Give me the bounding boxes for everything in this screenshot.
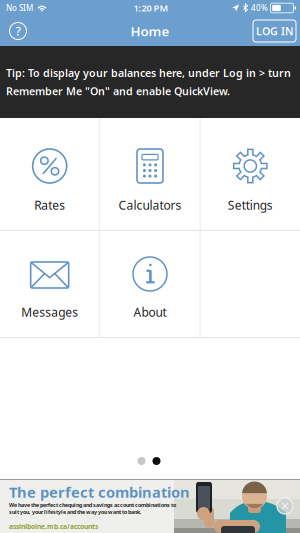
button[interactable]: Calculators [100, 118, 200, 230]
button[interactable]: Messages [0, 231, 99, 337]
button[interactable]: Close ad [272, 493, 298, 519]
staticText: Settings [228, 197, 273, 213]
staticText: Remember Me "On" and enable QuickView. [6, 84, 230, 98]
staticText: 1:20 PM [133, 2, 168, 14]
staticText: The perfect combination [9, 482, 190, 502]
button[interactable]: Settings [201, 118, 300, 230]
staticText: assiniboine.mb.ca/accounts [9, 522, 98, 531]
staticText: ? [15, 23, 20, 39]
staticText: Messages [21, 304, 78, 320]
button[interactable]: Help [5, 17, 31, 45]
staticText: suit you, your lifestyle and the way you… [9, 508, 141, 516]
button[interactable]: About [100, 231, 200, 337]
staticText: No SIM [6, 3, 33, 13]
staticText: 40% [251, 3, 268, 13]
staticText: Tip: To display your balances here, unde… [6, 66, 291, 80]
staticText: About [133, 304, 166, 320]
button[interactable]: Rates [0, 118, 99, 230]
staticText: Rates [34, 197, 65, 213]
staticText: LOG IN [256, 24, 293, 38]
staticText: Home [130, 22, 169, 40]
staticText: We have the perfect chequing and savings… [9, 501, 176, 509]
button[interactable]: LOG IN [253, 17, 296, 45]
staticText: Calculators [118, 197, 181, 213]
